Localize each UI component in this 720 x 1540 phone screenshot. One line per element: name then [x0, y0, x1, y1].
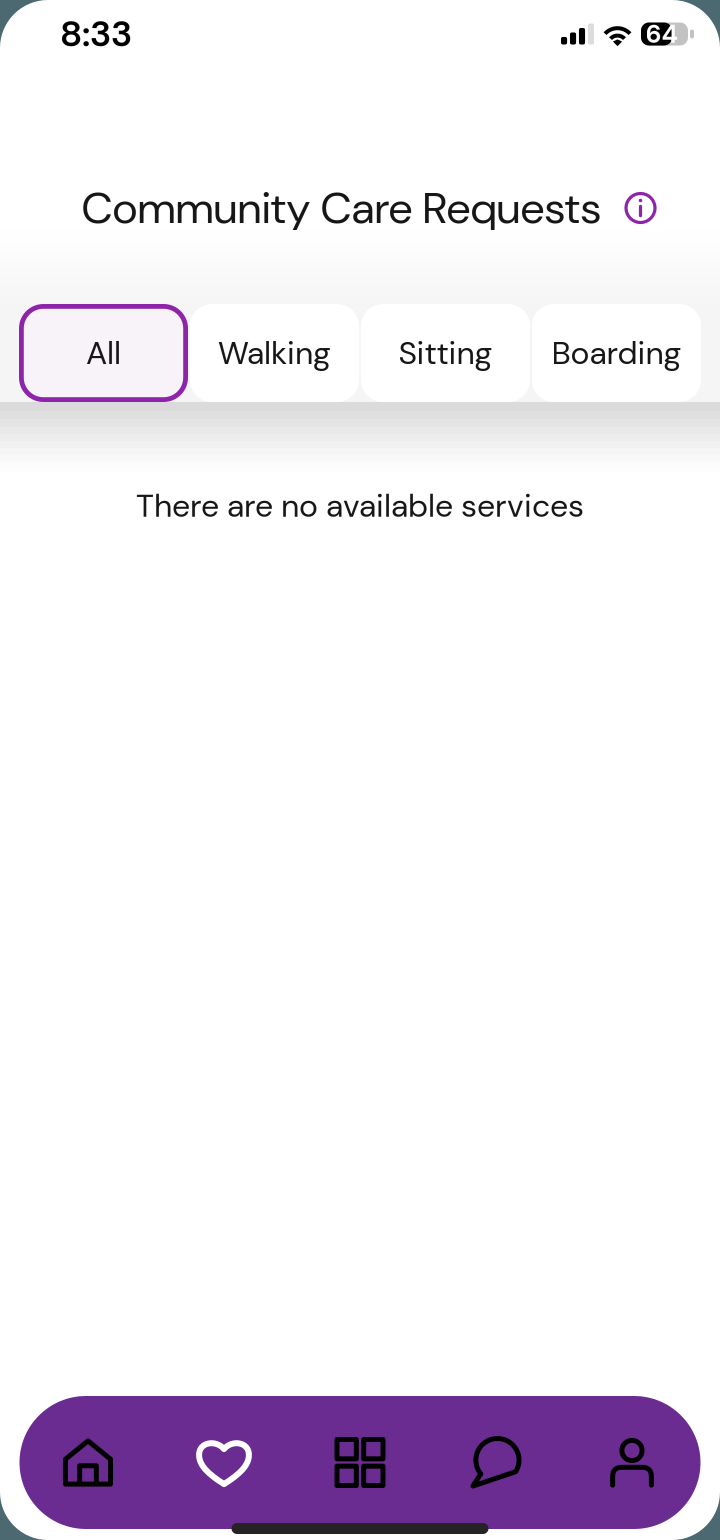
staticText: Walking — [218, 332, 331, 374]
staticText: Sitting — [398, 332, 492, 374]
staticText: 8:33 — [60, 11, 132, 57]
staticText: Community Care Requests — [81, 179, 601, 237]
button[interactable]: Boarding — [532, 304, 701, 402]
button[interactable]: Walking — [190, 304, 359, 402]
button[interactable]: Sitting — [361, 304, 530, 402]
staticText: 64 — [645, 17, 677, 50]
button[interactable]: Information — [624, 192, 656, 224]
button[interactable]: Profile — [564, 1395, 700, 1529]
button[interactable]: All — [19, 304, 188, 402]
staticText: All — [86, 332, 121, 374]
button[interactable]: Home — [20, 1395, 156, 1529]
button[interactable]: Categories — [292, 1395, 428, 1529]
staticText: Boarding — [551, 332, 681, 374]
staticText: There are no available services — [136, 485, 584, 527]
button[interactable]: Messages — [428, 1395, 564, 1529]
button[interactable]: Favourites — [156, 1395, 292, 1529]
